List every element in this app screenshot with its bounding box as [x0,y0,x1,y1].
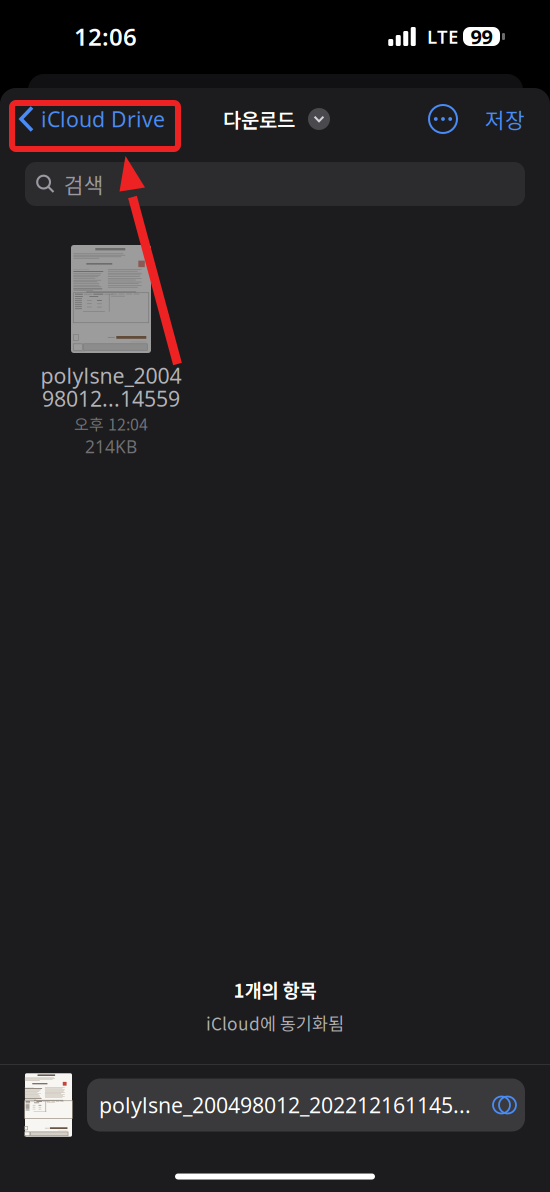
staticText: 다운로드 [223,104,295,133]
button[interactable]: 폴더 옵션 [308,108,330,130]
button[interactable]: 검색 [0,162,550,206]
staticText: 저장 [485,104,525,134]
staticText: polylsne_2004 [40,361,181,390]
button[interactable]: 더 보기 [429,105,457,133]
button[interactable]: 첨부 파일 미리보기 [25,1073,72,1137]
staticText: 오후 12:04 [74,412,148,435]
button[interactable]: iCloud Drive [0,88,181,150]
staticText: polylsne_200498012_202212161145... [99,1091,471,1119]
staticText: iCloud에 동기화됨 [206,1010,344,1036]
button[interactable]: 저장 [485,88,525,150]
staticText: 1개의 항목 [233,976,316,1003]
staticText: 12:06 [74,21,137,52]
button[interactable]: polylsne_200498012_202212161145... [87,1078,525,1131]
staticText: iCloud Drive [41,105,165,133]
staticText: 99 [470,23,492,50]
staticText: 98012...14559 [42,384,180,413]
staticText: 검색 [64,169,104,199]
staticText: LTE [427,24,458,49]
button[interactable]: polylsne_2004 [31,245,191,456]
staticText: 214KB [85,435,137,458]
